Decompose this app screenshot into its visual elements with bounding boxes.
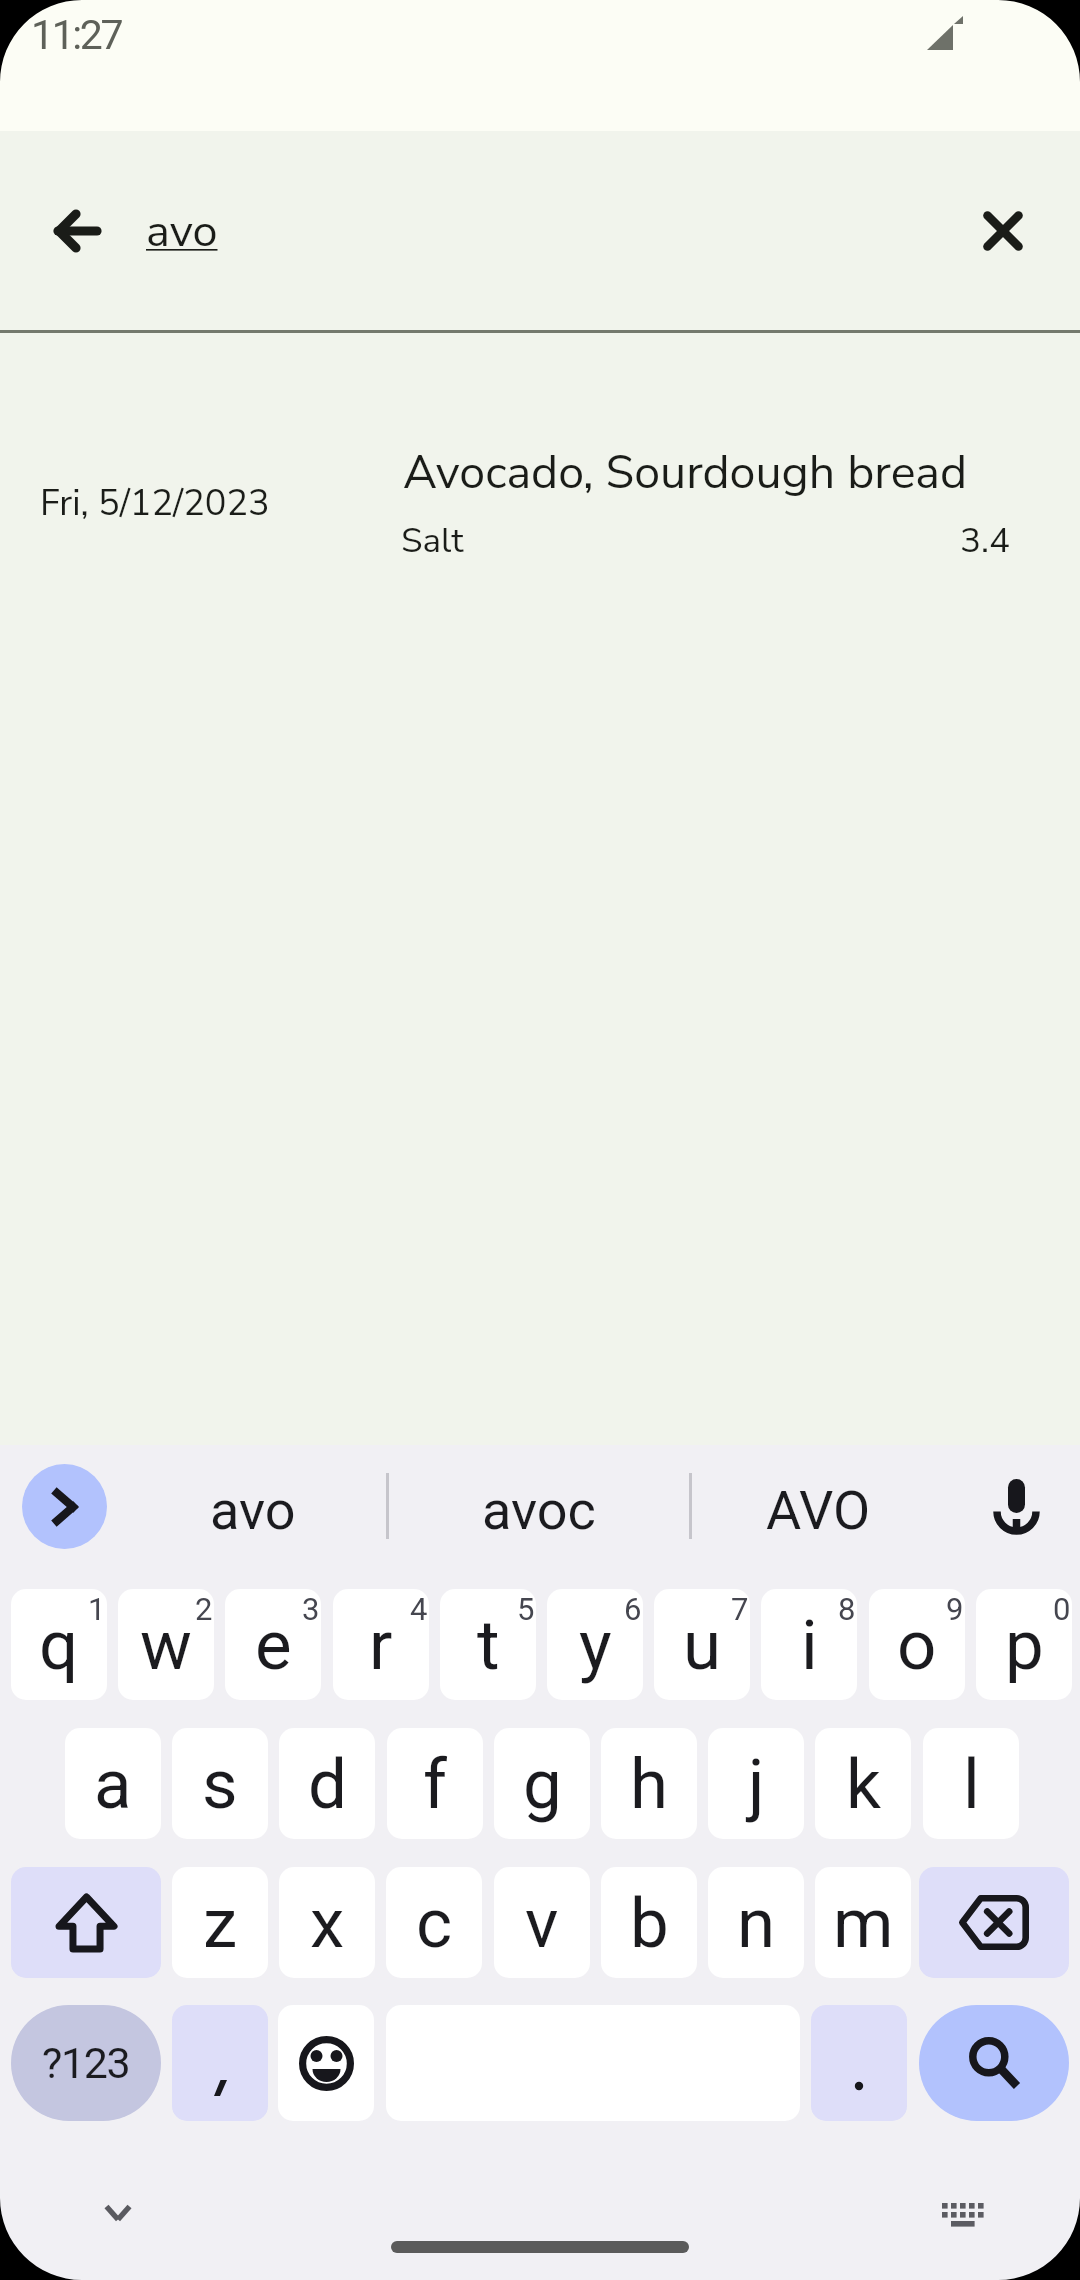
button[interactable]: h	[601, 1728, 697, 1839]
staticText: 4	[410, 1591, 428, 1627]
staticText: avoc	[482, 1479, 596, 1542]
staticText: i	[801, 1605, 818, 1686]
staticText: Fri, 5/12/2023	[40, 479, 270, 528]
staticText: r	[369, 1605, 393, 1686]
button[interactable]: avoc	[389, 1445, 689, 1567]
staticText: 3	[302, 1591, 320, 1627]
button[interactable]: m	[815, 1867, 911, 1978]
button[interactable]: v	[494, 1867, 590, 1978]
staticText: k	[846, 1744, 881, 1825]
staticText: avo	[210, 1479, 296, 1542]
button[interactable]: j	[708, 1728, 804, 1839]
staticText: x	[310, 1883, 345, 1964]
staticText: 3.4	[960, 517, 1010, 565]
button[interactable]: Comma	[172, 2005, 268, 2121]
staticText: v	[525, 1883, 559, 1964]
button[interactable]: x	[279, 1867, 375, 1978]
staticText: c	[416, 1883, 453, 1964]
staticText: h	[630, 1744, 669, 1825]
button[interactable]: Period	[811, 2005, 907, 2121]
button[interactable]: Clear search	[947, 175, 1059, 287]
staticText: e	[255, 1605, 292, 1686]
button[interactable]: Fri, 5/12/2023	[0, 332, 1080, 584]
staticText: q	[39, 1605, 79, 1686]
button[interactable]: n	[708, 1867, 804, 1978]
staticText: m	[833, 1883, 894, 1964]
staticText: 9	[946, 1591, 964, 1627]
button[interactable]: s	[172, 1728, 268, 1839]
button[interactable]: Voice input	[972, 1462, 1060, 1550]
button[interactable]: p	[976, 1589, 1072, 1700]
button[interactable]: avo	[120, 1445, 386, 1567]
button[interactable]: i	[761, 1589, 857, 1700]
button[interactable]: Hide keyboard	[88, 2183, 148, 2243]
button[interactable]: Navigate back	[21, 175, 133, 287]
staticText: f	[423, 1744, 447, 1825]
staticText: 1	[88, 1591, 106, 1627]
button[interactable]: Symbols	[11, 2005, 161, 2121]
staticText: 8	[838, 1591, 856, 1627]
button[interactable]: z	[172, 1867, 268, 1978]
staticText: p	[1005, 1605, 1044, 1686]
button[interactable]: q	[11, 1589, 107, 1700]
staticText: a	[94, 1744, 132, 1825]
button[interactable]: o	[869, 1589, 965, 1700]
button[interactable]: a	[65, 1728, 161, 1839]
staticText: 5	[517, 1591, 535, 1627]
staticText: y	[579, 1605, 612, 1686]
button[interactable]: Shift	[11, 1867, 161, 1978]
button[interactable]: w	[118, 1589, 214, 1700]
button[interactable]: t	[440, 1589, 536, 1700]
staticText: 0	[1053, 1591, 1071, 1627]
button[interactable]: Emoji	[278, 2005, 374, 2121]
staticText: Salt	[401, 517, 464, 565]
staticText: l	[963, 1744, 980, 1825]
staticText: g	[523, 1744, 562, 1825]
staticText: 7	[731, 1591, 749, 1627]
button[interactable]: d	[279, 1728, 375, 1839]
staticText: u	[683, 1605, 722, 1686]
staticText: o	[897, 1605, 937, 1686]
button[interactable]: u	[654, 1589, 750, 1700]
button[interactable]: g	[494, 1728, 590, 1839]
staticText: ?123	[42, 2038, 130, 2088]
staticText: t	[477, 1605, 500, 1686]
staticText: b	[630, 1883, 669, 1964]
staticText: d	[308, 1744, 347, 1825]
button[interactable]: AVO	[692, 1445, 944, 1567]
staticText: Avocado, Sourdough bread	[403, 441, 968, 504]
staticText: w	[140, 1605, 192, 1686]
staticText: n	[737, 1883, 776, 1964]
button[interactable]: y	[547, 1589, 643, 1700]
staticText: 6	[624, 1591, 642, 1627]
button[interactable]: More suggestions	[22, 1464, 107, 1549]
staticText: 2	[195, 1591, 213, 1627]
button[interactable]: Search	[919, 2005, 1069, 2121]
staticText: 11:27	[31, 11, 122, 59]
button[interactable]: c	[386, 1867, 482, 1978]
button[interactable]: Backspace	[919, 1867, 1069, 1978]
staticText: s	[202, 1744, 238, 1825]
staticText: z	[203, 1883, 238, 1964]
button[interactable]: e	[225, 1589, 321, 1700]
button[interactable]: f	[387, 1728, 483, 1839]
button[interactable]: k	[815, 1728, 911, 1839]
staticText: avo	[146, 201, 218, 262]
button[interactable]: l	[923, 1728, 1019, 1839]
button[interactable]: r	[333, 1589, 429, 1700]
button[interactable]: b	[601, 1867, 697, 1978]
staticText: AVO	[766, 1479, 871, 1542]
button[interactable]: Change keyboard	[932, 2184, 992, 2244]
staticText: j	[748, 1744, 765, 1825]
